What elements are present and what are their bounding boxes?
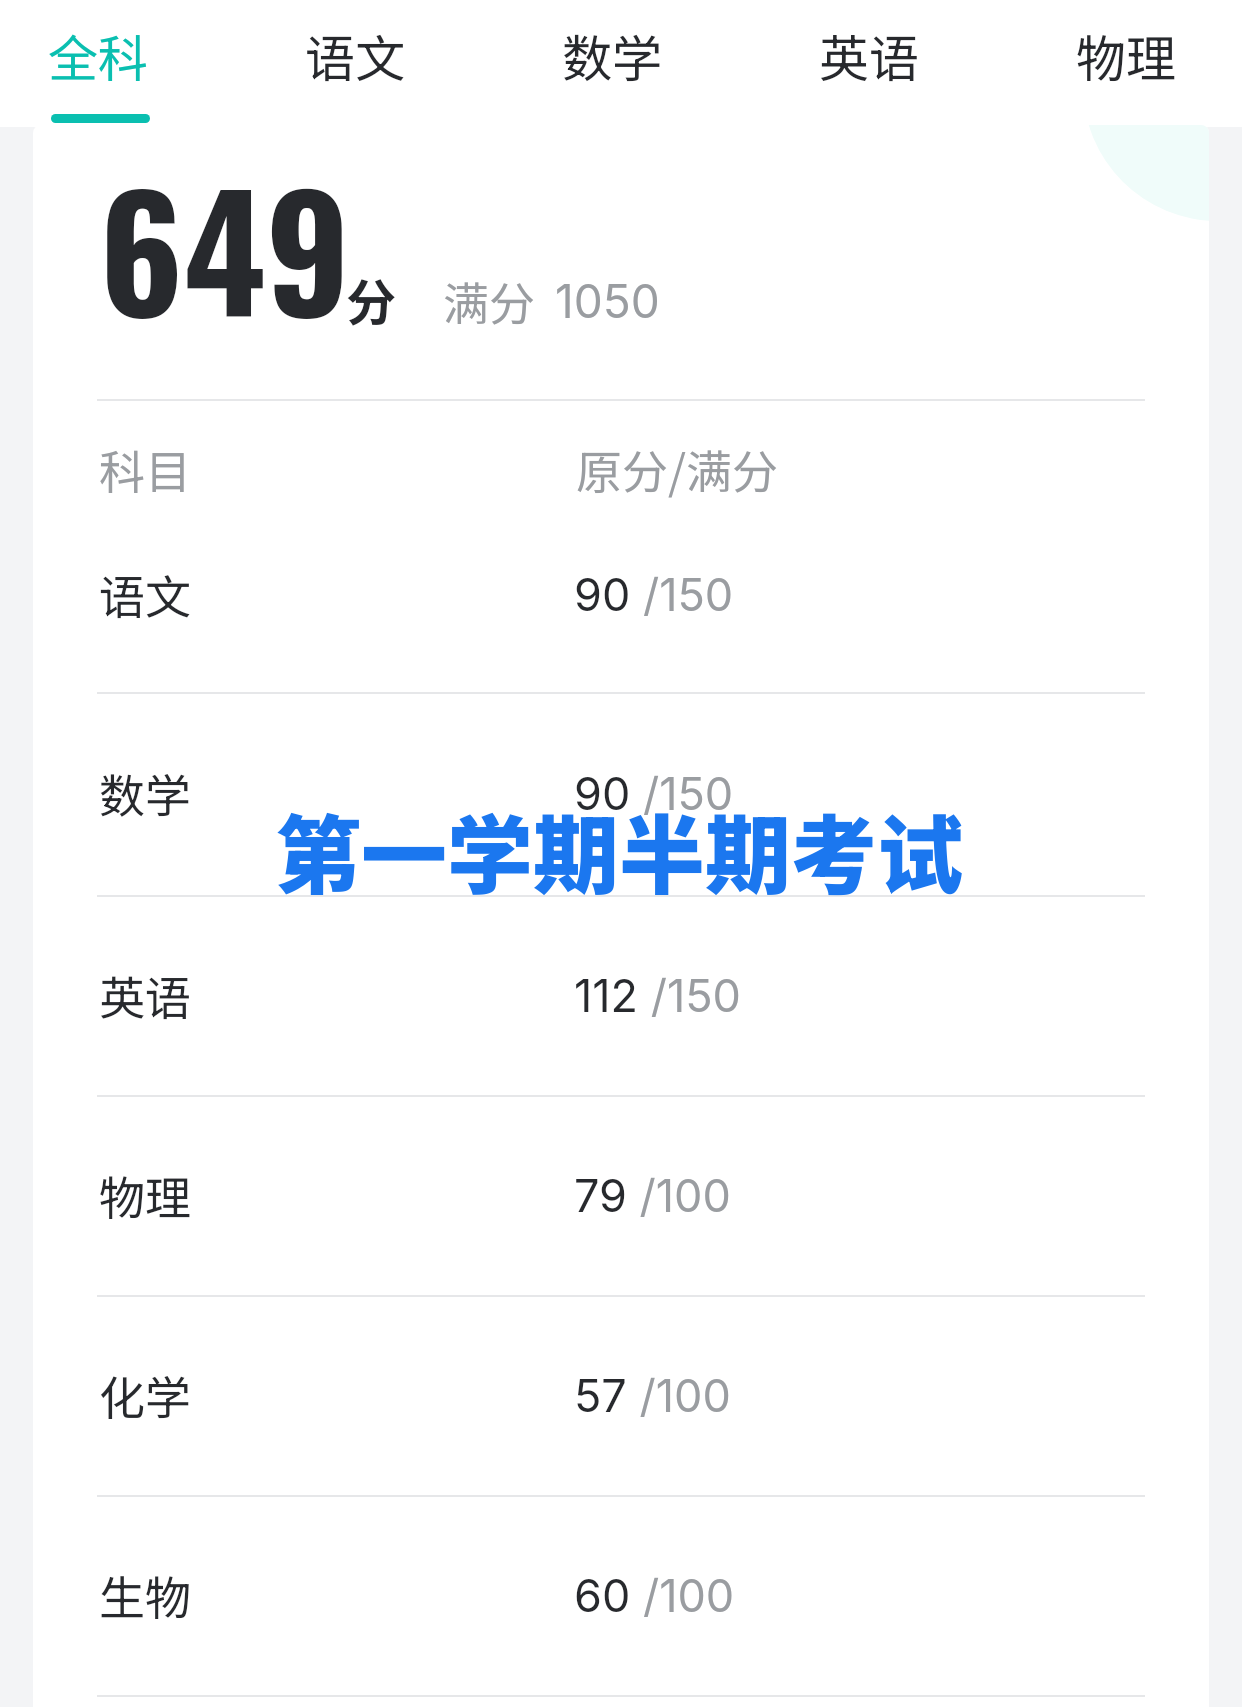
staticText: 60 /100 [574, 1568, 735, 1622]
staticText: 生物 [99, 1562, 191, 1629]
staticText: 649 [99, 130, 351, 363]
button[interactable] [33, 494, 1209, 694]
staticText: 90 /150 [574, 766, 734, 820]
staticText: 语文 [305, 19, 405, 91]
staticText: 数学 [562, 19, 662, 91]
staticText: 90 /150 [574, 567, 734, 621]
staticText: 分 [346, 263, 396, 335]
staticText: 科目 [99, 436, 191, 503]
staticText: 第一学期半期考试 [275, 787, 963, 912]
staticText: 57 /100 [574, 1368, 731, 1422]
staticText: 满分 [443, 268, 535, 335]
button[interactable] [33, 1295, 1209, 1495]
staticText: 物理 [99, 1162, 191, 1229]
button[interactable] [33, 1495, 1209, 1695]
button[interactable]: 语文 [240, 0, 470, 125]
staticText: 原分/满分 [576, 436, 779, 503]
staticText: 英语 [99, 962, 191, 1029]
button[interactable]: 全科 [0, 0, 213, 125]
button[interactable] [33, 693, 1209, 893]
staticText: 数学 [99, 760, 191, 827]
button[interactable]: 数学 [497, 0, 727, 125]
staticText: 1050 [555, 273, 660, 329]
staticText: 英语 [819, 19, 919, 91]
button[interactable] [33, 1095, 1209, 1295]
staticText: 79 /100 [574, 1168, 731, 1222]
staticText: 112 /150 [574, 968, 741, 1022]
staticText: 物理 [1076, 19, 1176, 91]
button[interactable]: 英语 [754, 0, 984, 125]
staticText: 化学 [99, 1362, 191, 1429]
staticText: 语文 [99, 561, 191, 628]
staticText: 全科 [48, 19, 148, 91]
button[interactable]: 物理 [1011, 0, 1241, 125]
button[interactable] [33, 895, 1209, 1095]
